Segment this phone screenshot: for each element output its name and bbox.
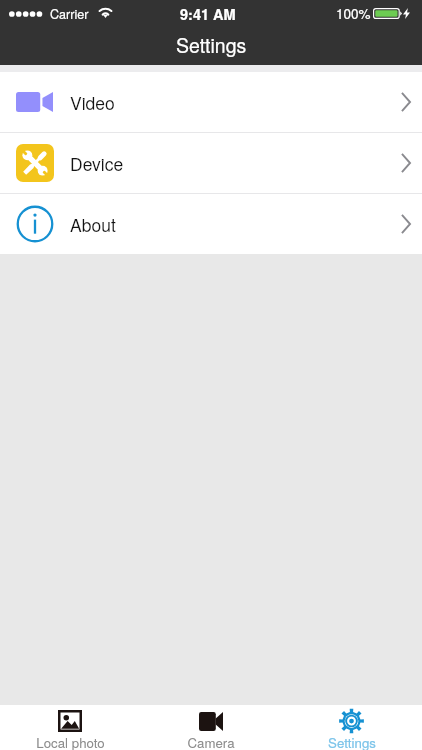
button[interactable]: Settings [281,705,422,750]
button[interactable]: Local photo [0,705,140,750]
staticText: Settings [328,733,376,750]
staticText: 100% [336,4,371,23]
button[interactable]: Camera [140,705,281,750]
staticText: About [70,212,116,237]
staticText: Device [70,151,124,176]
staticText: Carrier [50,5,89,23]
staticText: Video [70,90,115,115]
staticText: Camera [187,733,235,750]
staticText: Settings [176,31,247,59]
staticText: Local photo [36,733,105,750]
button[interactable]: Device [0,133,422,193]
button[interactable]: About [0,194,422,254]
button[interactable]: Video [0,72,422,132]
staticText: 9:41 AM [180,4,236,25]
